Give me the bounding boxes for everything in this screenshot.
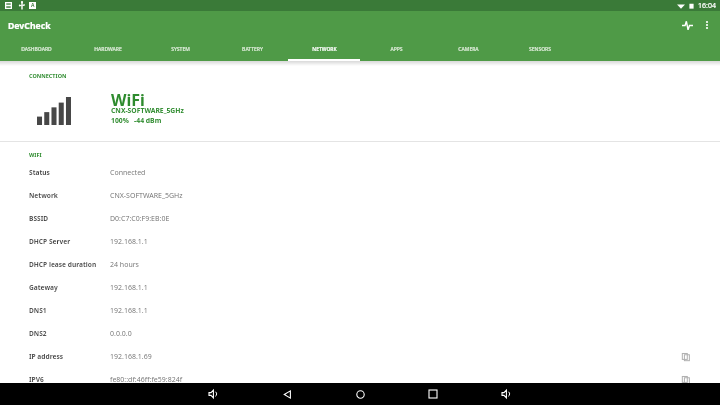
- staticText: Network: [29, 191, 110, 200]
- staticText: SENSORS: [529, 46, 551, 53]
- staticText: 16:04: [698, 1, 716, 11]
- staticText: 192.168.1.1: [110, 237, 148, 247]
- staticText: 192.168.1.69: [110, 352, 152, 362]
- staticText: Status: [29, 168, 110, 177]
- staticText: DASHBOARD: [21, 46, 52, 53]
- staticText: CNX-SOFTWARE_5GHz: [110, 191, 183, 201]
- staticText: 192.168.1.1: [110, 306, 148, 316]
- button[interactable]: Recents: [422, 383, 444, 405]
- button[interactable]: IP address: [0, 345, 720, 368]
- staticText: DNS1: [29, 306, 110, 315]
- staticText: WiFi: [111, 89, 145, 111]
- button[interactable]: BSSID: [0, 207, 720, 230]
- button[interactable]: BATTERY: [216, 38, 288, 61]
- staticText: DHCP lease duration: [29, 260, 110, 269]
- staticText: SYSTEM: [171, 46, 190, 53]
- button[interactable]: Volume up: [495, 383, 517, 405]
- button[interactable]: Gateway: [0, 276, 720, 299]
- button[interactable]: APPS: [360, 38, 432, 61]
- button[interactable]: DNS1: [0, 299, 720, 322]
- staticText: 0.0.0.0: [110, 329, 132, 339]
- staticText: D0:C7:C0:F9:EB:0E: [110, 214, 170, 224]
- button[interactable]: Status: [0, 161, 720, 184]
- staticText: 192.168.1.1: [110, 283, 148, 293]
- staticText: CONNECTION: [29, 72, 67, 79]
- staticText: CNX-SOFTWARE_5GHz: [111, 106, 184, 115]
- button[interactable]: Network: [0, 184, 720, 207]
- staticText: fe80::df:46ff:fe59:824f: [110, 375, 183, 385]
- button[interactable]: IPV6: [0, 368, 720, 391]
- button[interactable]: DASHBOARD: [0, 38, 72, 61]
- button[interactable]: Copy: [679, 350, 693, 364]
- staticText: 100% -44 dBm: [111, 116, 162, 125]
- button[interactable]: HARDWARE: [72, 38, 144, 61]
- staticText: WIFI: [29, 151, 42, 158]
- button[interactable]: Home: [349, 383, 371, 405]
- staticText: CAMERA: [458, 46, 479, 53]
- button[interactable]: DHCP Server: [0, 230, 720, 253]
- staticText: A: [31, 2, 35, 9]
- staticText: Gateway: [29, 283, 110, 292]
- button[interactable]: NETWORK: [288, 38, 360, 61]
- button[interactable]: Back: [276, 383, 298, 405]
- staticText: 24 hours: [110, 260, 139, 270]
- staticText: DevCheck: [8, 20, 51, 32]
- staticText: BATTERY: [242, 46, 263, 53]
- button[interactable]: SYSTEM: [144, 38, 216, 61]
- button[interactable]: Volume down: [202, 383, 224, 405]
- staticText: APPS: [390, 46, 403, 53]
- button[interactable]: Monitor: [677, 15, 697, 35]
- button[interactable]: DHCP lease duration: [0, 253, 720, 276]
- button[interactable]: Copy: [679, 373, 693, 387]
- staticText: HARDWARE: [94, 46, 122, 53]
- staticText: DNS2: [29, 329, 110, 338]
- staticText: BSSID: [29, 214, 110, 223]
- staticText: Connected: [110, 168, 146, 178]
- button[interactable]: DNS2: [0, 322, 720, 345]
- staticText: DHCP Server: [29, 237, 110, 246]
- staticText: IPV6: [29, 375, 110, 384]
- button[interactable]: More options: [697, 15, 717, 35]
- button[interactable]: CAMERA: [432, 38, 504, 61]
- staticText: NETWORK: [312, 46, 337, 53]
- staticText: IP address: [29, 352, 110, 361]
- button[interactable]: SENSORS: [504, 38, 576, 61]
